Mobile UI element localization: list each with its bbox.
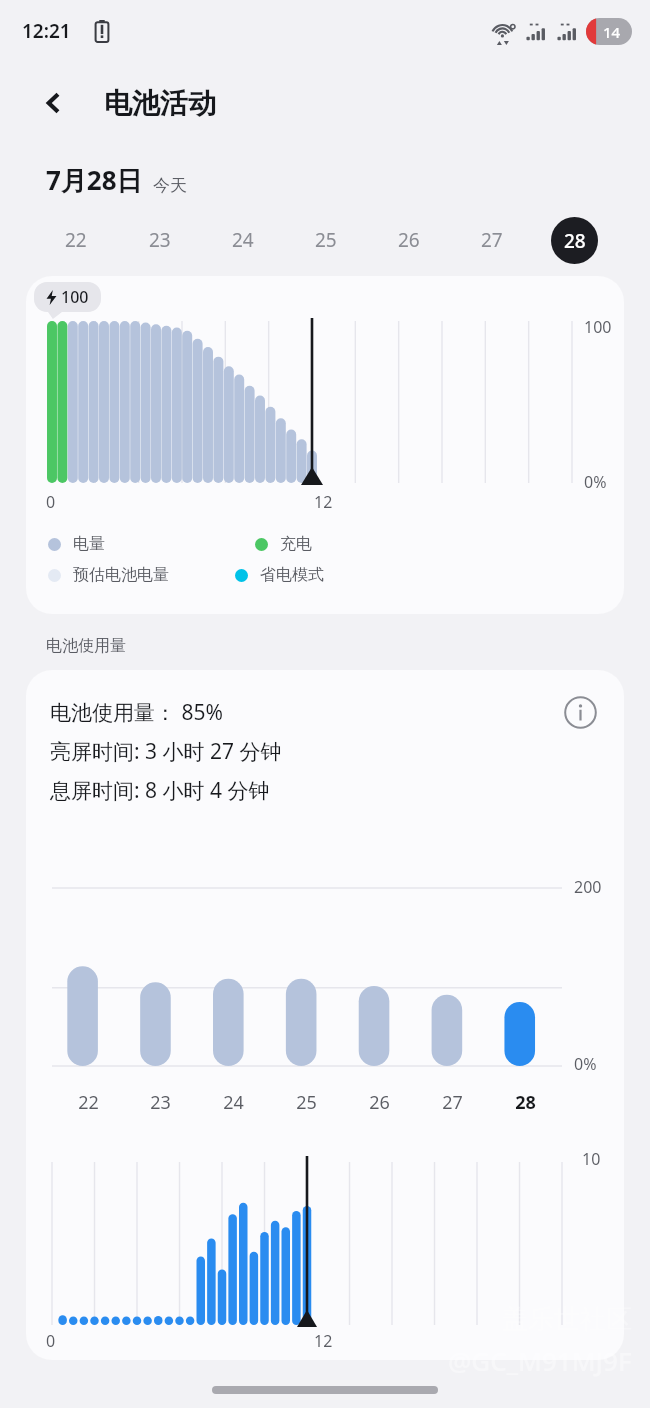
staticText: 电池活动 [104, 86, 216, 121]
staticText: 100 [584, 316, 612, 338]
staticText: 12:21 [22, 18, 71, 44]
staticText: 23 [150, 1090, 171, 1115]
staticText: 息屏时间: 8 小时 4 分钟 [50, 776, 270, 805]
staticText: 24 [232, 227, 254, 253]
staticText: 今天 [153, 175, 187, 196]
button[interactable]: 23 [118, 214, 201, 266]
staticText: 25 [315, 227, 337, 253]
staticText: 亮屏时间: 3 小时 27 分钟 [50, 737, 282, 766]
staticText: 22 [65, 227, 87, 253]
staticText: 24 [223, 1090, 244, 1115]
staticText: 电池使用量 [46, 636, 126, 656]
button[interactable]: 电池使用量： 85% [26, 670, 624, 1360]
button[interactable]: 26 [367, 214, 450, 266]
staticText: 12 [314, 491, 333, 513]
staticText: 10 [582, 1148, 601, 1170]
staticText: 电量 [73, 534, 105, 554]
staticText: 28 [564, 228, 586, 254]
staticText: 0% [584, 471, 607, 493]
button[interactable]: Back [32, 81, 76, 125]
staticText: 26 [398, 227, 420, 253]
staticText: 200 [574, 876, 602, 898]
staticText: 14 [603, 22, 621, 42]
staticText: 0 [46, 1330, 56, 1352]
staticText: 27 [442, 1090, 463, 1115]
button[interactable]: 22 [34, 214, 118, 266]
staticText: 预估电池电量 [73, 565, 169, 585]
staticText: 27 [481, 227, 503, 253]
button[interactable]: 27 [450, 214, 533, 266]
staticText: 28 [515, 1090, 536, 1115]
staticText: 12 [314, 1330, 333, 1352]
staticText: 25 [296, 1090, 317, 1115]
staticText: 充电 [280, 534, 312, 554]
staticText: 23 [149, 227, 171, 253]
staticText: 0% [574, 1053, 597, 1075]
staticText: 省电模式 [260, 565, 324, 585]
staticText: 22 [78, 1090, 99, 1115]
button[interactable]: 28 [533, 214, 616, 266]
staticText: 7月28日 [46, 162, 143, 198]
staticText: 100 [61, 286, 89, 308]
button[interactable]: 24 [201, 214, 284, 266]
button[interactable]: Info [556, 688, 604, 736]
staticText: 26 [369, 1090, 390, 1115]
staticText: @GC_M91MJ9F [448, 1343, 632, 1378]
staticText: 0 [46, 491, 56, 513]
button[interactable]: 100 [26, 276, 624, 614]
staticText: 电池使用量： 85% [50, 698, 223, 727]
button[interactable]: 25 [284, 214, 367, 266]
